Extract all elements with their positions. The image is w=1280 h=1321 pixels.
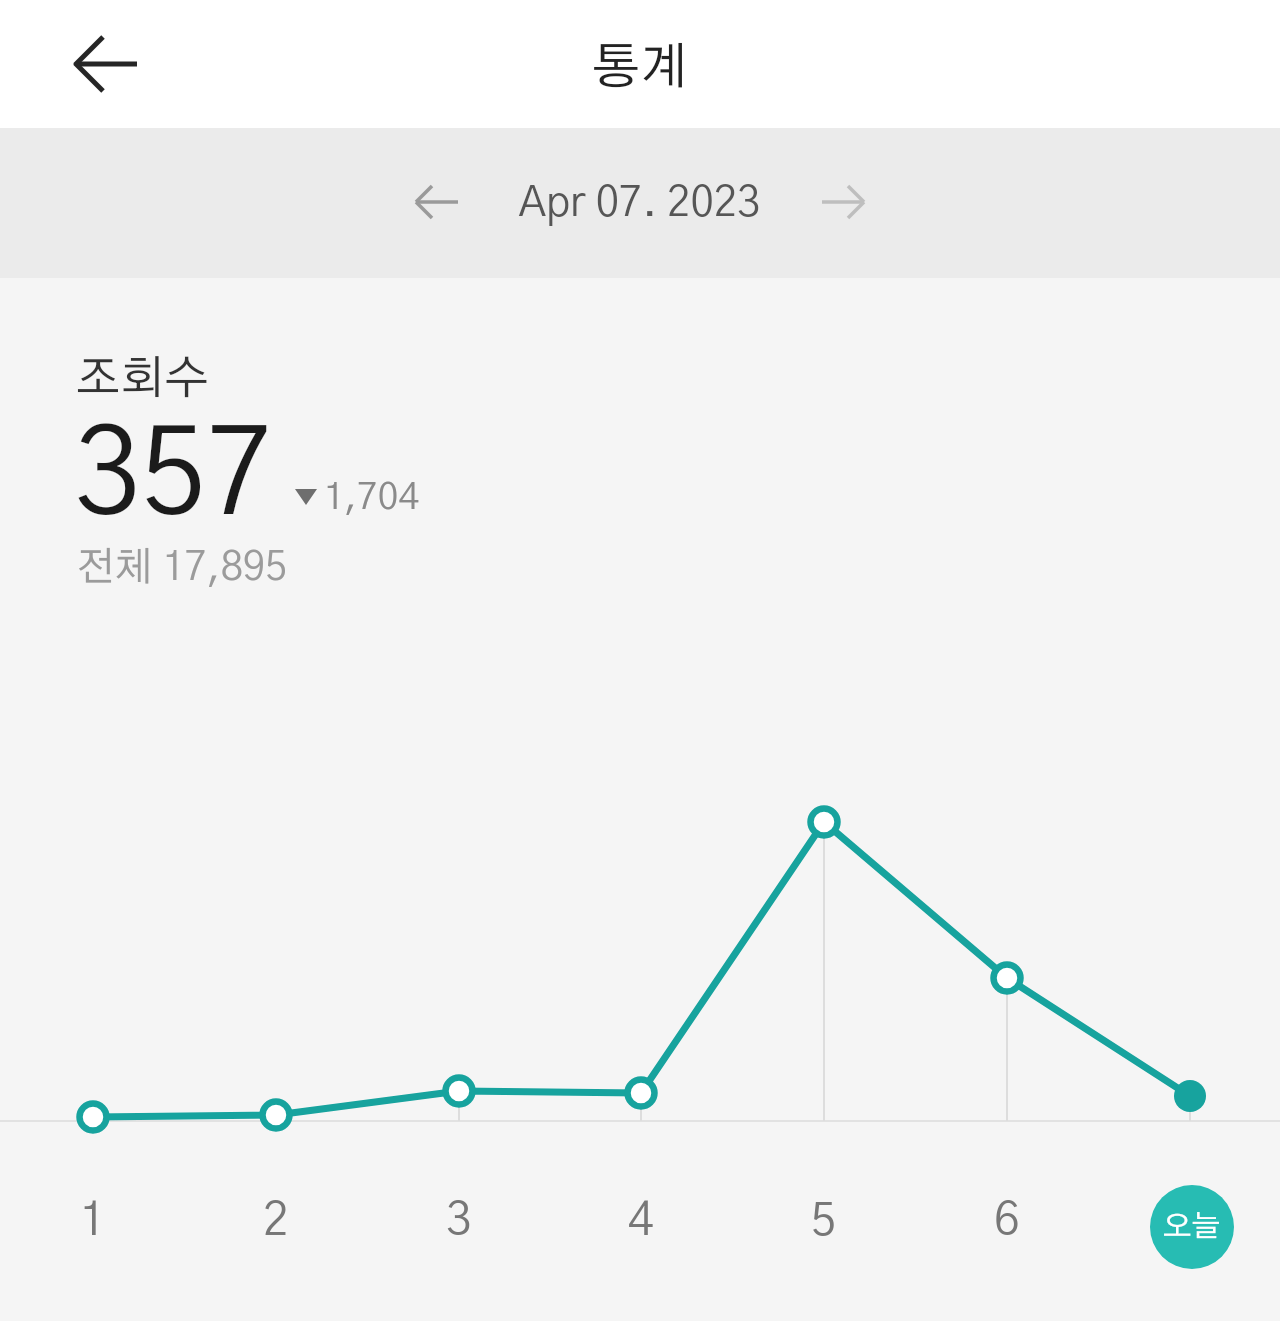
staticText: 1,704 (324, 479, 419, 516)
staticText: 357 (74, 417, 275, 537)
staticText: 3 (446, 1198, 472, 1244)
button[interactable]: 오늘 (1150, 1185, 1234, 1269)
staticText: 전체 17,895 (76, 548, 288, 588)
staticText: 5 (811, 1198, 837, 1244)
button[interactable] (804, 158, 894, 248)
staticText: 통계 (592, 43, 689, 93)
staticText: Apr 07. 2023 (519, 182, 761, 224)
staticText: 6 (994, 1198, 1020, 1244)
staticText: 오늘 (1163, 1212, 1221, 1242)
staticText: 조회수 (76, 356, 209, 402)
button[interactable] (0, 0, 128, 128)
staticText: 4 (628, 1198, 654, 1244)
button[interactable] (386, 158, 476, 248)
staticText: 2 (263, 1198, 289, 1244)
staticText: 1 (80, 1198, 106, 1244)
